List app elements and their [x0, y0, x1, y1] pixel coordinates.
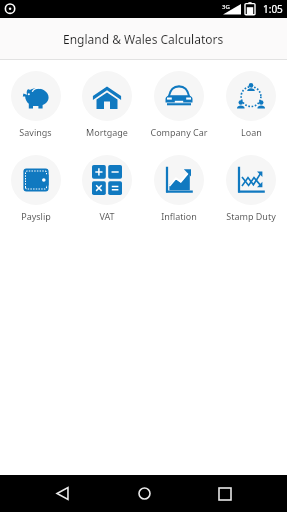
button[interactable]: Loan [215, 69, 287, 140]
staticText: Savings [19, 126, 52, 138]
button[interactable]: Savings [0, 69, 71, 140]
button[interactable]: VAT [71, 153, 143, 224]
staticText: Mortgage [86, 126, 128, 138]
button[interactable]: Home [124, 475, 164, 512]
button[interactable]: Company Car [143, 69, 215, 140]
staticText: Stamp Duty [226, 210, 276, 222]
staticText: Payslip [21, 210, 51, 222]
staticText: VAT [99, 210, 115, 222]
button[interactable]: Mortgage [71, 69, 143, 140]
button[interactable]: Payslip [0, 153, 71, 224]
staticText: Company Car [150, 126, 208, 138]
button[interactable]: Back [42, 475, 82, 512]
staticText: 3G [222, 3, 230, 11]
staticText: 1:05 [263, 2, 283, 16]
staticText: Loan [241, 126, 262, 138]
staticText: England & Wales Calculators [63, 31, 224, 47]
button[interactable]: Recent apps [205, 475, 245, 512]
button[interactable]: Stamp Duty [215, 153, 287, 224]
button[interactable]: Inflation [143, 153, 215, 224]
staticText: Inflation [161, 210, 197, 222]
